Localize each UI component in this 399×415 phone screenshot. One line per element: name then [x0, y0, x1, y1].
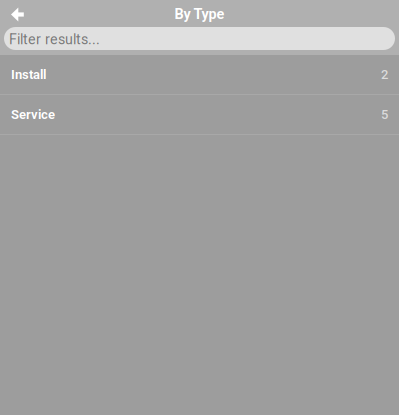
staticText: 2 — [381, 67, 388, 82]
button[interactable]: Service — [0, 95, 399, 134]
staticText: 5 — [381, 107, 388, 122]
staticText: Install — [11, 67, 46, 82]
button[interactable]: Back — [0, 0, 30, 26]
staticText: Service — [11, 107, 55, 122]
button[interactable]: Filter results... — [4, 27, 395, 50]
staticText: Filter results... — [9, 31, 100, 48]
staticText: By Type — [174, 6, 224, 22]
button[interactable]: Install — [0, 55, 399, 94]
